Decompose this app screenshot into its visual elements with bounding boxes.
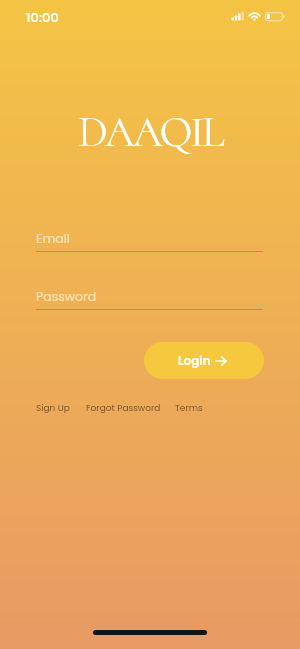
staticText: Password — [36, 288, 97, 305]
staticText: Forgot Password — [86, 402, 161, 415]
staticText: Terms — [175, 402, 203, 415]
staticText: Login — [178, 352, 211, 369]
button[interactable]: Forgot Password — [86, 402, 161, 415]
button[interactable]: Email — [36, 230, 263, 252]
button[interactable]: Terms — [175, 402, 203, 415]
staticText: 10:00 — [26, 8, 59, 26]
staticText: Sign Up — [36, 402, 70, 415]
button[interactable]: Password — [36, 288, 263, 310]
button[interactable]: Sign Up — [36, 402, 70, 415]
staticText: DAAQIL — [78, 106, 223, 158]
button[interactable]: Login — [144, 342, 264, 379]
staticText: Email — [36, 230, 70, 247]
